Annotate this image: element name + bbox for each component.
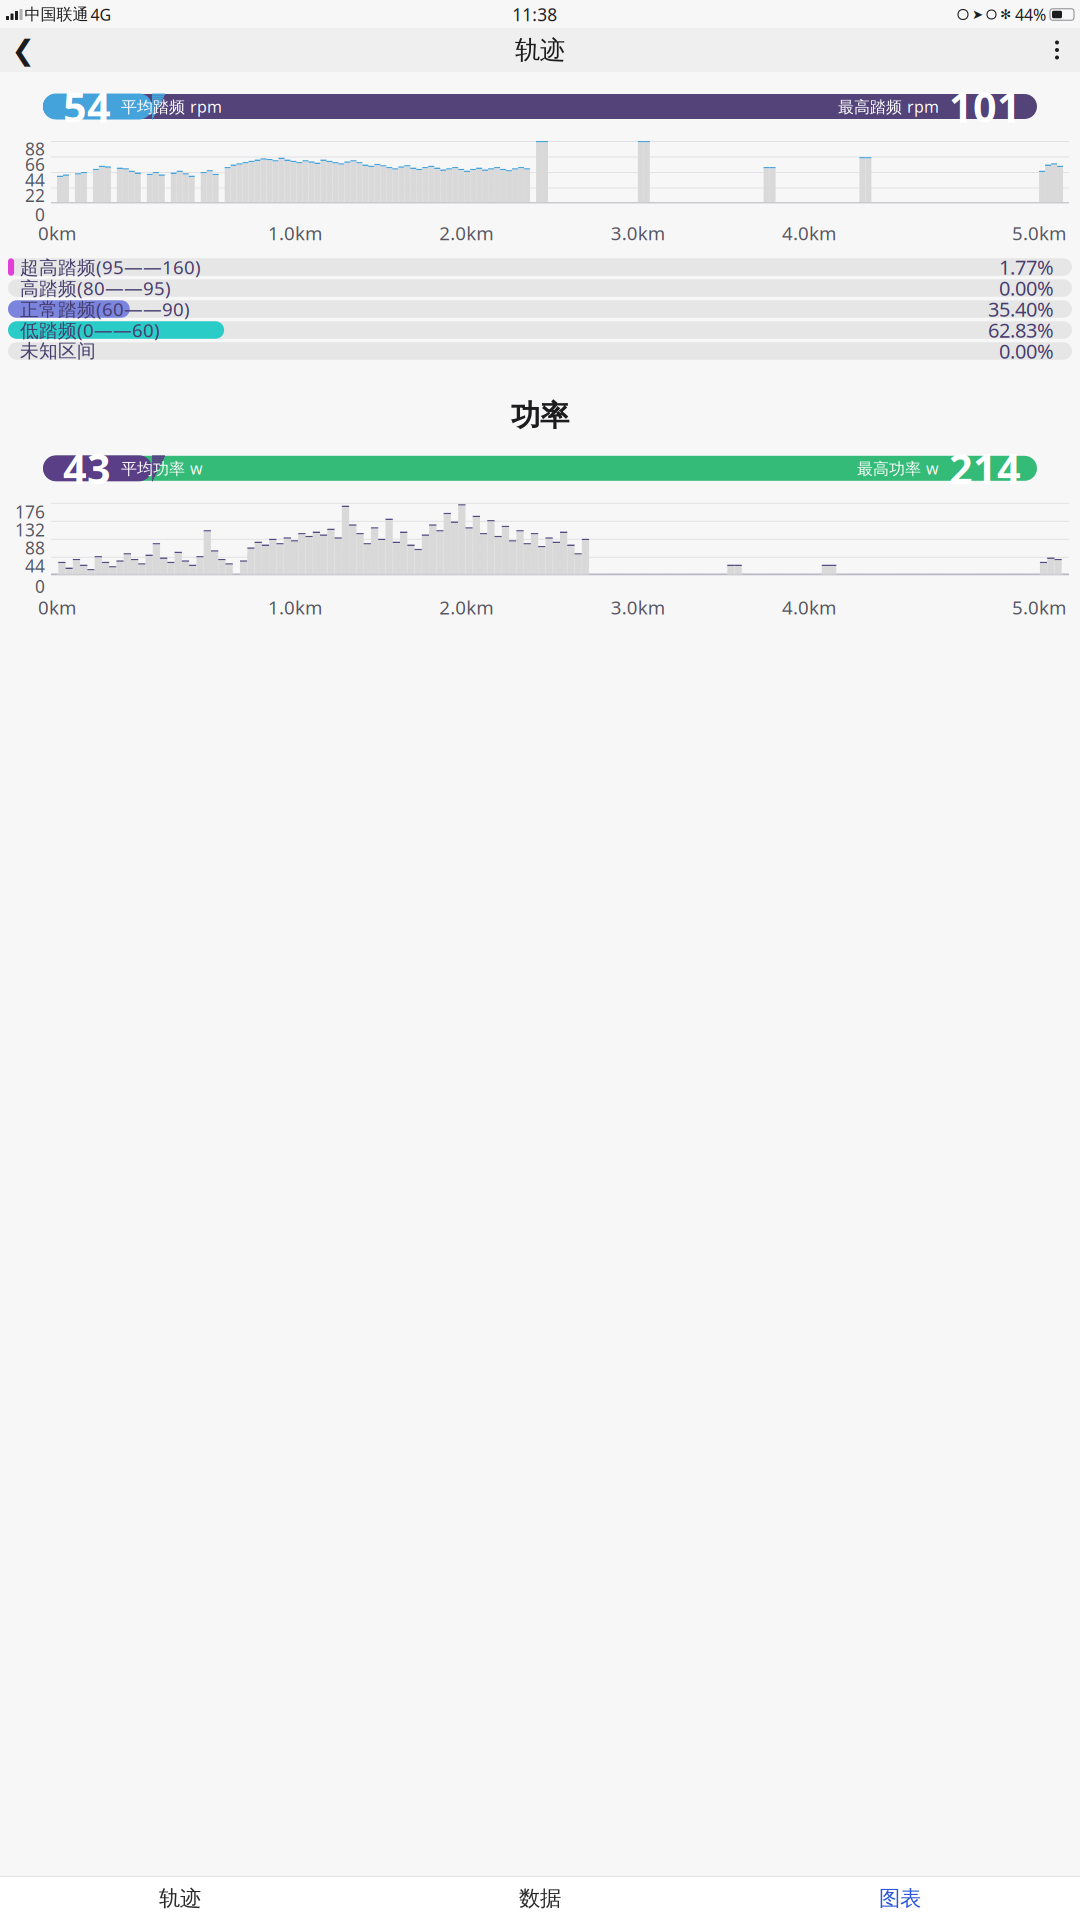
staticText: 低踏频(0——60) — [20, 318, 160, 342]
staticText: 4G — [90, 4, 111, 25]
staticText: 132 — [15, 518, 45, 541]
staticText: 正常踏频(60——90) — [20, 297, 190, 321]
staticText: 1.0km — [268, 595, 322, 620]
staticText: ➤ — [972, 7, 983, 22]
staticText: 0km — [38, 220, 76, 245]
staticText: 66 — [25, 153, 45, 176]
button[interactable]: More options — [1034, 28, 1080, 72]
staticText: 44 — [25, 168, 45, 191]
staticText: 平均踏频 rpm — [121, 96, 222, 117]
staticText: 最高踏频 rpm — [838, 96, 939, 117]
staticText: 54 — [63, 79, 111, 134]
button[interactable]: Back — [0, 28, 46, 72]
button[interactable]: 轨迹 — [0, 1877, 360, 1920]
button[interactable]: 低踏频(0——60) — [8, 321, 1072, 339]
staticText: 最高功率 w — [857, 458, 939, 479]
staticText: 功率 — [511, 398, 569, 434]
staticText: 3.0km — [611, 220, 665, 245]
button[interactable]: 正常踏频(60——90) — [8, 300, 1072, 318]
staticText: 数据 — [519, 1885, 561, 1912]
staticText: 4.0km — [782, 595, 836, 620]
staticText: 176 — [15, 500, 45, 523]
staticText: 1.77% — [999, 254, 1054, 280]
staticText: ✻ — [1000, 7, 1011, 22]
staticText: 62.83% — [988, 317, 1054, 343]
button[interactable]: 图表 — [720, 1877, 1080, 1920]
staticText: 88 — [25, 137, 45, 160]
button[interactable]: 超高踏频(95——160) — [8, 258, 1072, 276]
staticText: 未知区间 — [20, 340, 96, 362]
button[interactable]: 数据 — [360, 1877, 720, 1920]
staticText: 中国联通 — [24, 5, 88, 24]
staticText: 5.0km — [1012, 220, 1066, 245]
staticText: 44% — [1015, 4, 1046, 25]
staticText: 图表 — [879, 1885, 921, 1912]
staticText: 轨迹 — [515, 34, 565, 65]
staticText: 3.0km — [611, 595, 665, 620]
staticText: 0 — [35, 575, 45, 598]
staticText: 88 — [25, 536, 45, 559]
staticText: 2.0km — [439, 595, 493, 620]
staticText: 44 — [25, 554, 45, 577]
staticText: 1.0km — [268, 220, 322, 245]
staticText: 平均功率 w — [121, 458, 203, 479]
staticText: 2.0km — [439, 220, 493, 245]
staticText: 0 — [35, 203, 45, 226]
staticText: 0.00% — [999, 275, 1054, 301]
staticText: 超高踏频(95——160) — [20, 255, 201, 279]
staticText: 0km — [38, 595, 76, 620]
staticText: 35.40% — [988, 296, 1054, 322]
staticText: 0.00% — [999, 338, 1054, 364]
staticText: 5.0km — [1012, 595, 1066, 620]
staticText: ❮ — [11, 34, 34, 66]
staticText: 4.0km — [782, 220, 836, 245]
staticText: 214 — [949, 441, 1021, 496]
staticText: 101 — [949, 79, 1021, 134]
staticText: 高踏频(80——95) — [20, 276, 171, 300]
staticText: 22 — [25, 184, 45, 207]
staticText: 43 — [63, 441, 111, 496]
staticText: 11:38 — [512, 3, 557, 26]
button[interactable]: 高踏频(80——95) — [8, 279, 1072, 297]
staticText: 轨迹 — [159, 1885, 201, 1912]
button[interactable]: 未知区间 — [8, 342, 1072, 360]
